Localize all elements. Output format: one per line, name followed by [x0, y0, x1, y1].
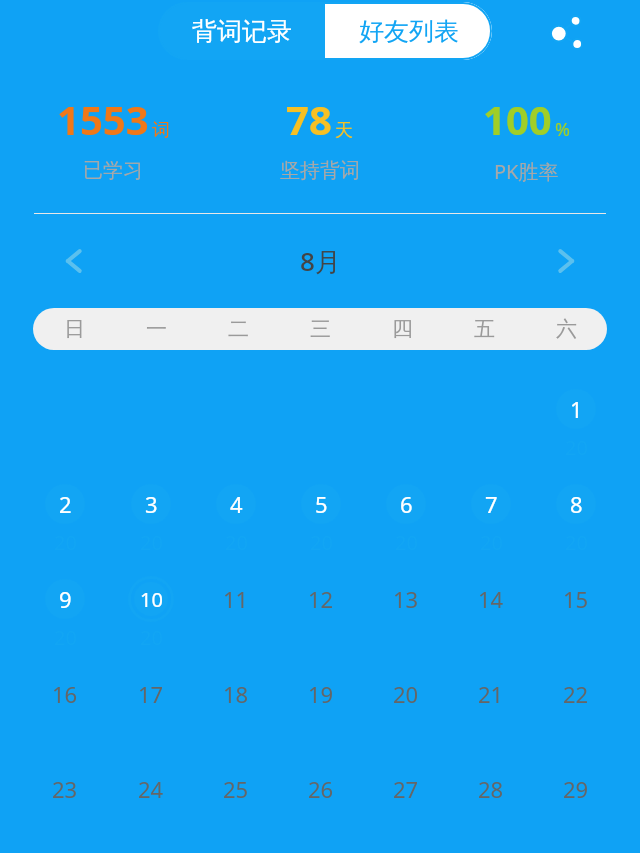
- button[interactable]: 6: [364, 467, 448, 562]
- staticText: 29: [563, 774, 589, 804]
- button[interactable]: 4: [194, 467, 278, 562]
- button[interactable]: 7: [449, 467, 533, 562]
- staticText: 11: [223, 584, 249, 614]
- button[interactable]: 16: [23, 657, 107, 752]
- staticText: 27: [393, 774, 419, 804]
- staticText: 好友列表: [359, 16, 459, 47]
- button[interactable]: 27: [364, 752, 448, 847]
- staticText: 7: [485, 489, 498, 519]
- button[interactable]: 24: [109, 752, 193, 847]
- staticText: 21: [478, 679, 504, 709]
- staticText: 20: [393, 679, 419, 709]
- button[interactable]: 29: [534, 752, 618, 847]
- staticText: 14: [478, 584, 504, 614]
- button[interactable]: 23: [23, 752, 107, 847]
- staticText: 6: [400, 489, 413, 519]
- button[interactable]: 2: [23, 467, 107, 562]
- staticText: 12: [308, 584, 334, 614]
- staticText: 坚持背词: [280, 158, 360, 183]
- staticText: 19: [308, 679, 334, 709]
- button[interactable]: 背词记录: [158, 2, 325, 60]
- staticText: 8: [570, 489, 583, 519]
- staticText: 天: [335, 119, 353, 142]
- button[interactable]: 15: [534, 562, 618, 657]
- staticText: 13: [393, 584, 419, 614]
- staticText: 100: [483, 92, 552, 146]
- staticText: 9: [59, 584, 72, 614]
- staticText: 28: [478, 774, 504, 804]
- button[interactable]: Previous month: [48, 235, 100, 287]
- staticText: 六: [556, 316, 577, 342]
- staticText: 23: [52, 774, 78, 804]
- button[interactable]: 20: [364, 657, 448, 752]
- button[interactable]: 21: [449, 657, 533, 752]
- staticText: %: [555, 117, 570, 142]
- button[interactable]: 3: [109, 467, 193, 562]
- staticText: 16: [52, 679, 78, 709]
- button[interactable]: Next month: [540, 235, 592, 287]
- staticText: 8月: [300, 243, 341, 279]
- staticText: 26: [308, 774, 334, 804]
- staticText: 22: [563, 679, 589, 709]
- button[interactable]: 10: [109, 562, 193, 657]
- staticText: 已学习: [83, 158, 143, 183]
- staticText: 78: [286, 92, 332, 146]
- button[interactable]: 26: [279, 752, 363, 847]
- button[interactable]: 25: [194, 752, 278, 847]
- button[interactable]: 28: [449, 752, 533, 847]
- staticText: 日: [64, 316, 85, 342]
- staticText: 一: [146, 316, 167, 342]
- staticText: 4: [230, 489, 243, 519]
- staticText: 四: [392, 316, 413, 342]
- staticText: 三: [310, 316, 331, 342]
- button[interactable]: 18: [194, 657, 278, 752]
- button[interactable]: 好友列表: [325, 2, 492, 60]
- staticText: 词: [152, 119, 170, 142]
- button[interactable]: 1: [534, 372, 618, 467]
- button[interactable]: 14: [449, 562, 533, 657]
- button[interactable]: 8: [534, 467, 618, 562]
- staticText: 3: [145, 489, 158, 519]
- staticText: 25: [223, 774, 249, 804]
- button[interactable]: 22: [534, 657, 618, 752]
- button[interactable]: 5: [279, 467, 363, 562]
- staticText: 1553: [57, 92, 149, 146]
- staticText: 5: [315, 489, 328, 519]
- staticText: 二: [228, 316, 249, 342]
- staticText: 五: [474, 316, 495, 342]
- button[interactable]: Share: [538, 4, 594, 60]
- staticText: 18: [223, 679, 249, 709]
- staticText: 背词记录: [192, 16, 292, 47]
- staticText: 24: [138, 774, 164, 804]
- staticText: 17: [138, 679, 164, 709]
- button[interactable]: 9: [23, 562, 107, 657]
- staticText: 10: [140, 586, 163, 613]
- button[interactable]: 12: [279, 562, 363, 657]
- button[interactable]: 13: [364, 562, 448, 657]
- button[interactable]: 17: [109, 657, 193, 752]
- button[interactable]: 19: [279, 657, 363, 752]
- staticText: PK胜率: [494, 158, 559, 185]
- staticText: 15: [563, 584, 589, 614]
- button[interactable]: 11: [194, 562, 278, 657]
- staticText: 2: [59, 489, 72, 519]
- staticText: 1: [570, 394, 583, 424]
